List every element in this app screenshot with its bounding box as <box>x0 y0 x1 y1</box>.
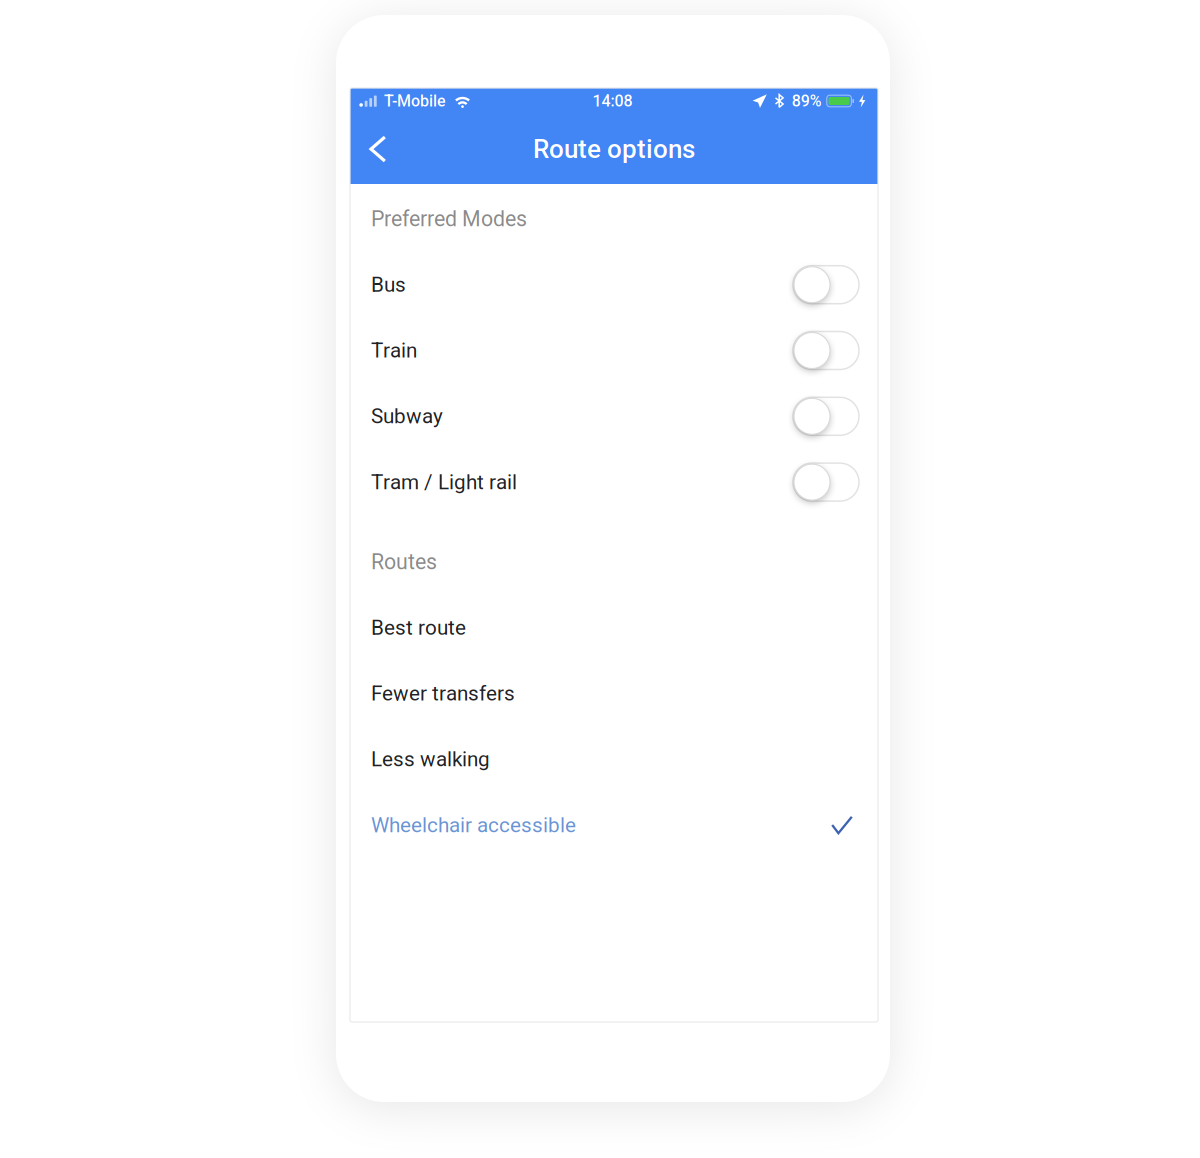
staticText: T-Mobile <box>384 92 446 110</box>
button[interactable]: Wheelchair accessible <box>371 792 859 858</box>
staticText: Route options <box>533 134 695 164</box>
button[interactable]: Back <box>355 126 401 172</box>
staticText: 14:08 <box>592 92 632 110</box>
staticText: Train <box>371 338 417 363</box>
staticText: Less walking <box>371 747 490 771</box>
staticText: Routes <box>371 549 437 574</box>
staticText: Bus <box>371 273 406 297</box>
button[interactable]: Bus <box>371 252 859 318</box>
button[interactable]: Less walking <box>371 726 859 792</box>
staticText: Wheelchair accessible <box>371 813 576 837</box>
button[interactable]: Train <box>371 318 859 383</box>
button[interactable]: Fewer transfers <box>371 661 859 726</box>
staticText: Fewer transfers <box>371 681 515 706</box>
button[interactable]: Tram / Light rail <box>371 449 859 515</box>
staticText: Subway <box>371 404 443 428</box>
button[interactable]: Best route <box>371 595 859 661</box>
staticText: Tram / Light rail <box>371 470 517 494</box>
button[interactable]: Subway <box>371 383 859 449</box>
staticText: 89% <box>792 92 822 110</box>
staticText: Preferred Modes <box>371 206 527 231</box>
staticText: Best route <box>371 616 466 640</box>
